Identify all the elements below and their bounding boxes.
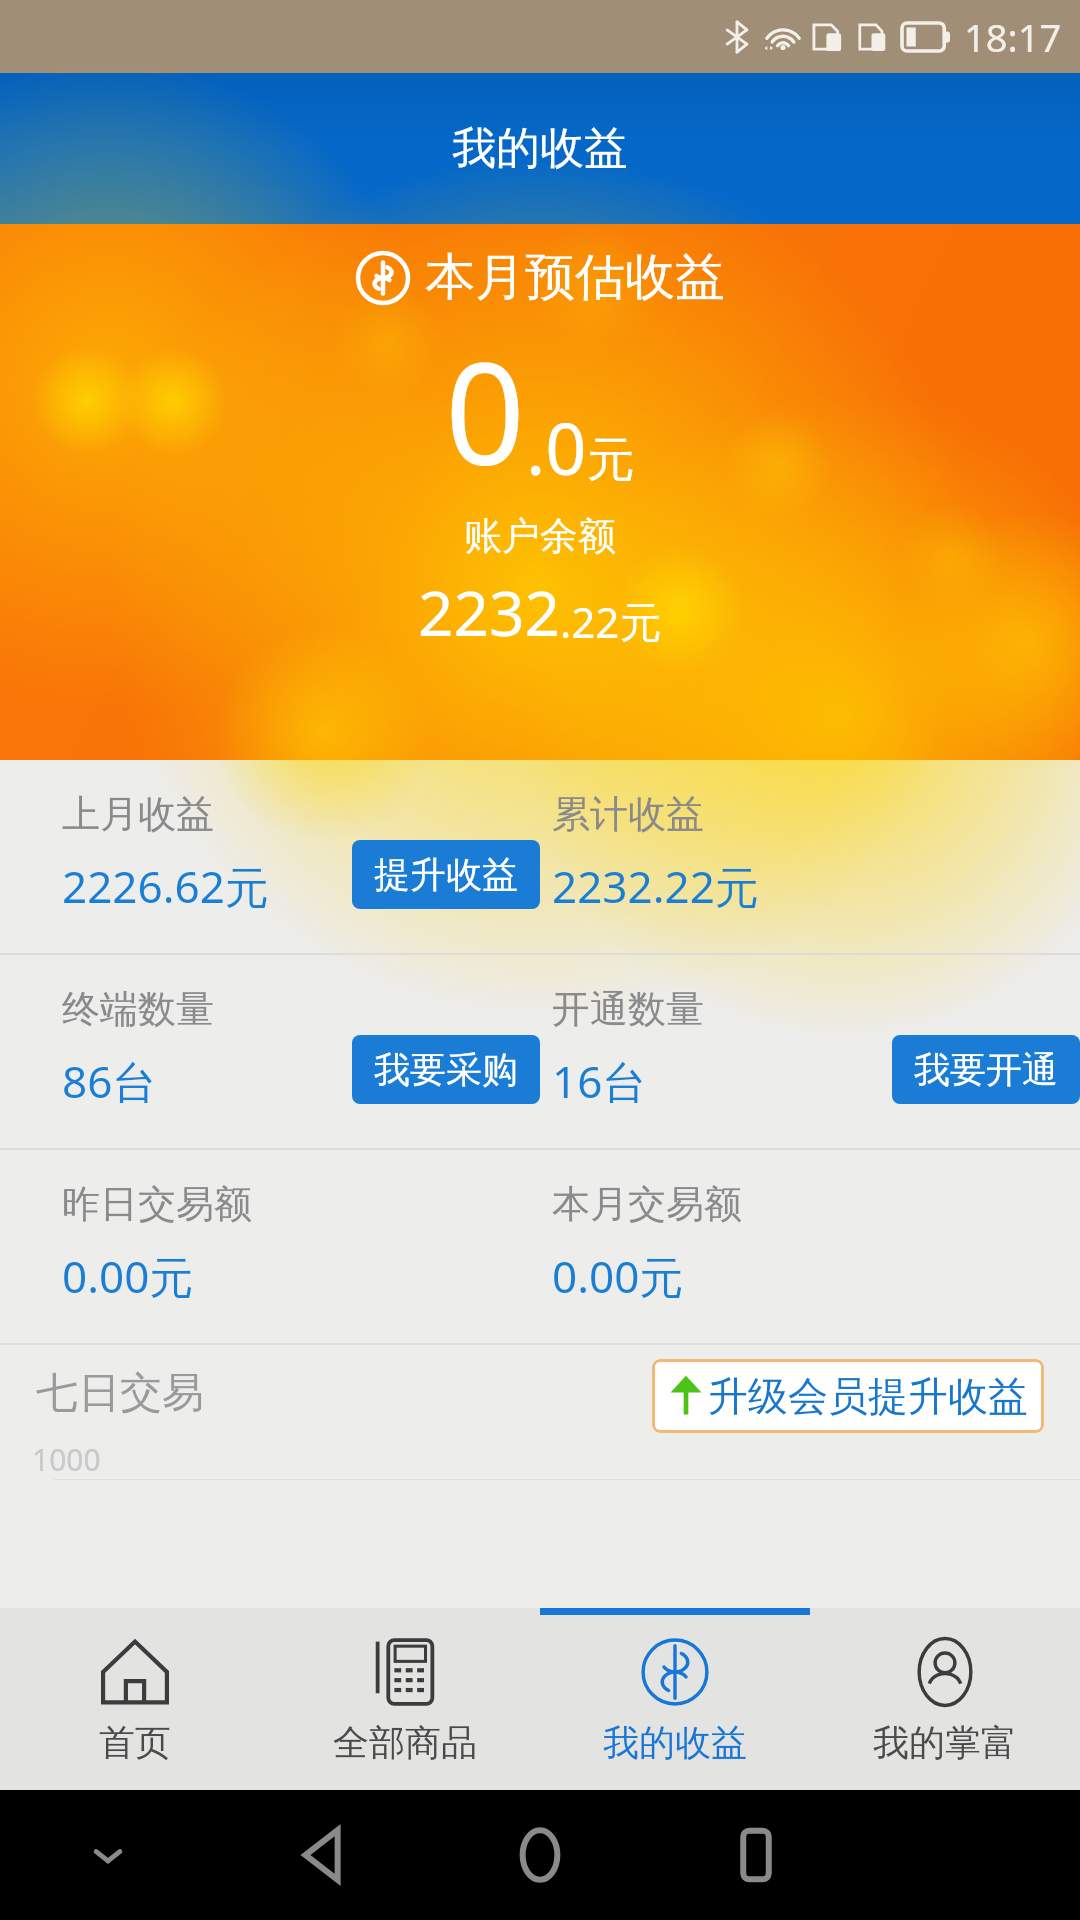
button[interactable]: 首页 bbox=[0, 1608, 270, 1790]
other: Coin bbox=[355, 250, 411, 306]
staticText: 86台 bbox=[62, 1051, 157, 1111]
other: Hide bbox=[87, 1834, 129, 1876]
staticText: 升级会员提升收益 bbox=[708, 1371, 1028, 1421]
other: Recents bbox=[727, 1826, 785, 1884]
other: Back bbox=[293, 1824, 355, 1886]
staticText: 1000 bbox=[32, 1439, 101, 1480]
staticText: 0.00元 bbox=[552, 1246, 684, 1306]
staticText: 我的收益 bbox=[452, 121, 628, 176]
staticText: 0 bbox=[445, 315, 526, 506]
button[interactable]: 提升收益 bbox=[352, 840, 540, 909]
staticText: 我要开通 bbox=[914, 1047, 1058, 1092]
other: Home bbox=[509, 1824, 571, 1886]
staticText: 首页 bbox=[99, 1720, 171, 1765]
staticText: 七日交易 bbox=[36, 1367, 204, 1420]
staticText: 2232.22元 bbox=[552, 856, 759, 916]
staticText: 账户余额 bbox=[464, 512, 616, 560]
staticText: 本月交易额 bbox=[552, 1180, 742, 1228]
staticText: 我的收益 bbox=[603, 1720, 747, 1765]
button[interactable]: 升级会员提升收益 bbox=[652, 1359, 1044, 1433]
staticText: 昨日交易额 bbox=[62, 1180, 252, 1228]
staticText: 18:17 bbox=[964, 11, 1062, 63]
staticText: 累计收益 bbox=[552, 790, 704, 838]
button[interactable]: 我的收益 bbox=[540, 1608, 810, 1790]
staticText: 全部商品 bbox=[333, 1720, 477, 1765]
staticText: 元 bbox=[620, 597, 662, 650]
staticText: 开通数量 bbox=[552, 985, 704, 1033]
staticText: 2226.62元 bbox=[62, 856, 269, 916]
staticText: 终端数量 bbox=[62, 985, 214, 1033]
button[interactable]: 我要开通 bbox=[892, 1035, 1080, 1104]
staticText: 提升收益 bbox=[374, 852, 518, 897]
staticText: 元 bbox=[587, 430, 635, 490]
staticText: 本月预估收益 bbox=[425, 246, 725, 309]
staticText: 2232 bbox=[418, 570, 560, 654]
staticText: .0 bbox=[526, 398, 587, 496]
staticText: 上月收益 bbox=[62, 790, 214, 838]
staticText: .22 bbox=[560, 593, 620, 650]
staticText: 我要采购 bbox=[374, 1047, 518, 1092]
staticText: 0.00元 bbox=[62, 1246, 194, 1306]
staticText: 我的掌富 bbox=[873, 1720, 1017, 1765]
button[interactable]: 我要采购 bbox=[352, 1035, 540, 1104]
staticText: 16台 bbox=[552, 1051, 647, 1111]
button[interactable]: 全部商品 bbox=[270, 1608, 540, 1790]
button[interactable]: 我的掌富 bbox=[810, 1608, 1080, 1790]
